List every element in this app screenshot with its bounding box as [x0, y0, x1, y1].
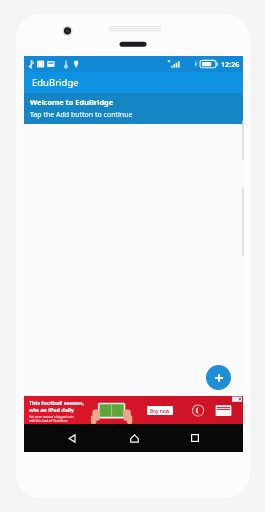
button[interactable]: Buy now [147, 406, 173, 415]
staticText: win an iPad daily [29, 406, 75, 413]
staticText: This football season, [29, 399, 85, 406]
button[interactable]: Home [120, 424, 148, 452]
button[interactable]: Add [206, 365, 231, 390]
staticText: Tap the Add button to continue [30, 110, 133, 120]
button[interactable]: Back [58, 424, 86, 452]
button[interactable]: This football season, [24, 396, 243, 424]
staticText: Buy now [150, 408, 170, 414]
button[interactable]: EduBridge [24, 72, 243, 93]
button[interactable]: Welcome to EduBridge [24, 93, 243, 124]
staticText: Get your season's biggest win [29, 415, 74, 419]
button[interactable]: Recent apps [181, 424, 209, 452]
staticText: EduBridge [32, 76, 79, 89]
staticText: Welcome to EduBridge [30, 97, 114, 107]
staticText: 12:26 [221, 59, 240, 69]
staticText: with the best of Vodafone [29, 419, 68, 423]
